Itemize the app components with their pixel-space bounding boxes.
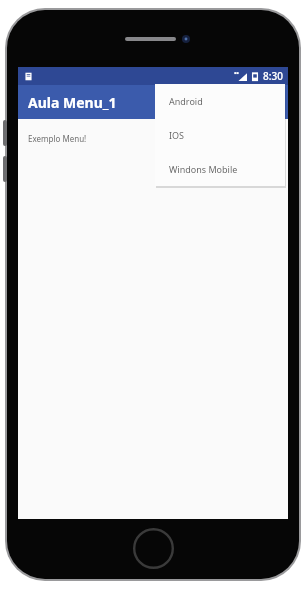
staticText: IOS <box>169 129 185 141</box>
staticText: 8:30 <box>263 69 283 83</box>
staticText: Aula Menu_1 <box>28 93 117 112</box>
button[interactable]: Android <box>155 84 285 118</box>
staticText: Exemplo Menu! <box>28 133 87 144</box>
button[interactable]: Windons Mobile <box>155 152 285 186</box>
staticText: Android <box>169 95 203 107</box>
button[interactable]: IOS <box>155 118 285 152</box>
staticText: Windons Mobile <box>169 163 238 175</box>
